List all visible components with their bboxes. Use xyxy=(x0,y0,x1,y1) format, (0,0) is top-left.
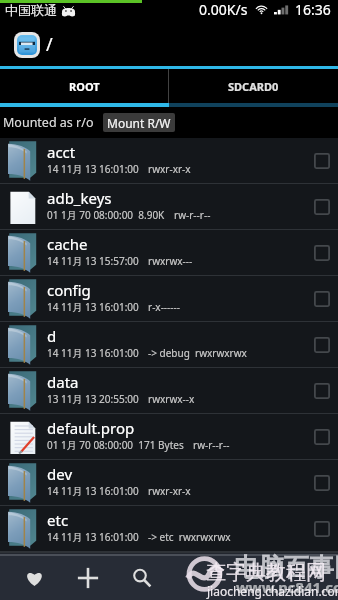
staticText: rwxrwx--- xyxy=(148,254,193,268)
staticText: 14 11月 13 16:01:00 xyxy=(47,300,139,314)
staticText: SDCARD0 xyxy=(228,79,279,94)
button[interactable]: dev xyxy=(0,460,338,506)
button[interactable]: default.prop xyxy=(0,414,338,460)
staticText: cache xyxy=(47,234,88,254)
staticText: config xyxy=(47,280,91,300)
staticText: default.prop xyxy=(47,418,135,438)
button[interactable]: Select etc xyxy=(314,521,330,537)
staticText: 16:36 xyxy=(295,0,331,19)
staticText: www.pc841.com xyxy=(236,577,338,597)
button[interactable]: Select adb_keys xyxy=(314,199,330,215)
button[interactable]: adb_keys xyxy=(0,184,338,230)
staticText: 14 11月 13 16:01:00 xyxy=(47,346,139,360)
staticText: -> debug rwxrwxrwx xyxy=(148,346,247,360)
staticText: rwxr-xr-x xyxy=(148,484,191,498)
button[interactable]: / xyxy=(0,23,338,66)
staticText: r-x------ xyxy=(148,300,180,314)
button[interactable]: Add xyxy=(61,556,115,600)
button[interactable]: d xyxy=(0,322,338,368)
staticText: -> etc rwxrwxrwx xyxy=(148,530,231,544)
staticText: 0.00K/s xyxy=(199,0,248,19)
button[interactable]: SDCARD0 xyxy=(169,69,338,103)
staticText: 查字典教程网 xyxy=(206,560,326,585)
staticText: 14 11月 13 15:57:00 xyxy=(47,254,139,268)
staticText: 中国联通 xyxy=(5,2,57,18)
staticText: rw-r--r-- xyxy=(193,438,230,452)
button[interactable]: Select default.prop xyxy=(314,429,330,445)
button[interactable]: acct xyxy=(0,138,338,184)
button[interactable]: Select dev xyxy=(314,475,330,491)
staticText: dev xyxy=(47,464,73,484)
staticText: 13 11月 13 20:55:00 xyxy=(47,392,139,406)
button[interactable]: Select cache xyxy=(314,245,330,261)
staticText: acct xyxy=(47,142,76,162)
button[interactable]: cache xyxy=(0,230,338,276)
staticText: 01 1月 70 08:00:00 171 Bytes xyxy=(47,438,184,452)
staticText: d xyxy=(47,326,57,346)
staticText: 14 11月 13 16:01:00 xyxy=(47,484,139,498)
staticText: rwxrwx--x xyxy=(148,392,195,406)
staticText: etc xyxy=(47,510,69,530)
button[interactable]: etc xyxy=(0,506,338,552)
staticText: / xyxy=(46,32,53,57)
button[interactable]: Select config xyxy=(314,291,330,307)
button[interactable]: Select d xyxy=(314,337,330,353)
button[interactable]: Select acct xyxy=(314,153,330,169)
staticText: 14 11月 13 16:01:00 xyxy=(47,162,139,176)
staticText: jiaocheng.chazidian.com xyxy=(207,583,338,599)
staticText: 电脑百事网 xyxy=(234,552,338,583)
button[interactable]: ROOT xyxy=(0,69,168,103)
staticText: Mounted as r/o xyxy=(3,114,94,131)
staticText: rw-r--r-- xyxy=(174,208,211,222)
button[interactable]: Search xyxy=(115,556,169,600)
button[interactable]: data xyxy=(0,368,338,414)
staticText: data xyxy=(47,372,79,392)
button[interactable]: config xyxy=(0,276,338,322)
staticText: 01 1月 70 08:00:00 8.90K xyxy=(47,208,165,222)
staticText: Mount R/W xyxy=(107,115,171,131)
button[interactable]: Select data xyxy=(314,383,330,399)
button[interactable]: Favorites xyxy=(7,556,61,600)
staticText: ROOT xyxy=(69,79,100,94)
button[interactable]: Mount R/W xyxy=(103,113,175,132)
staticText: adb_keys xyxy=(47,188,112,208)
staticText: rwxr-xr-x xyxy=(148,162,191,176)
staticText: 14 11月 13 16:01:00 xyxy=(47,530,139,544)
